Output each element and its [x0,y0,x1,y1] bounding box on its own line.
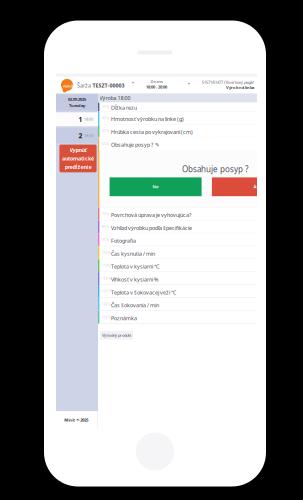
staticText: 51571/51477 Olivarkový pagáč [202,80,254,85]
button[interactable]: Nie [110,177,202,196]
staticText: Obsahuje posyp ? [182,164,248,174]
staticText: Teplota v šokovacej veži °C [111,289,176,296]
button[interactable]: 5/16 [98,124,257,137]
staticText: 8/16 [102,225,109,229]
staticText: 1 [78,115,82,124]
staticText: Čas šokovania / min [111,302,159,309]
staticText: 5/16 [102,129,109,133]
staticText: Čas kysnutia / min [111,250,155,257]
staticText: Poznámka [111,315,137,322]
staticText: 02.09.2025 [68,97,86,102]
staticText: 18:00 - 20:00 [146,84,167,89]
button[interactable]: 11/16 [98,259,257,272]
staticText: Vzhľad výrobku podľa špecifikácie [111,224,192,231]
staticText: 9/16 [102,238,109,242]
staticText: 10/16 [102,251,111,255]
staticText: Vlhkosť v kysiarni % [111,276,158,283]
staticText: Hrúbka cesta po vykrajovaní (cm) [111,128,193,135]
button[interactable]: 10/16 [98,246,257,259]
staticText: ▾ [188,81,190,86]
staticText: Teplota v kysiarni °C [111,263,159,270]
staticText: Výsledný produkt [102,333,131,338]
staticText: Minit © 2025 [64,417,88,423]
button[interactable]: 9/16 [98,233,257,246]
staticText: 11/16 [102,264,111,267]
button[interactable]: 14/16 [98,298,257,311]
staticText: ▾ [132,80,134,85]
button[interactable]: 4/16 [98,112,257,124]
staticText: 14/16 [102,303,111,306]
button[interactable]: Šarža [77,78,139,91]
staticText: Hmotnosť výrobku na linke (g) [111,115,184,122]
staticText: Nie [153,184,159,189]
staticText: Povrchová úprava je vyhovujúca? [111,211,191,218]
staticText: Výrobná linka [226,85,254,90]
staticText: automatické [62,155,94,162]
staticText: Obsahuje posyp ? ✎ [111,141,159,148]
staticText: 4/16 [102,116,109,120]
button[interactable]: Vypnúť [59,145,97,172]
staticText: minit [63,83,74,89]
staticText: TESZT-00003 [92,82,124,89]
staticText: 15/16 [102,316,111,319]
staticText: Áno [253,184,262,189]
button[interactable]: 13/16 [98,285,257,298]
staticText: Vypnúť [69,146,86,153]
button[interactable]: 2 [56,128,98,143]
staticText: 3/16 [102,105,109,109]
staticText: Tuesday [69,103,85,108]
staticText: Fotografia [111,237,136,244]
staticText: 7/16 [102,212,109,216]
staticText: Výroba 18:00 [99,94,130,102]
staticText: 13/16 [102,290,111,293]
staticText: 18:00 [84,133,93,138]
button[interactable]: 12/16 [98,272,257,285]
button[interactable]: 15/16 [98,311,257,324]
button[interactable]: Zmena [146,78,194,91]
button[interactable]: 8/16 [98,220,257,233]
staticText: Šarža [77,82,91,89]
staticText: Dĺžka rezu [111,104,137,111]
staticText: Zmena [150,79,162,84]
staticText: 12/16 [102,277,111,280]
button[interactable]: 6/16 [98,137,256,150]
button[interactable]: Áno [212,177,303,196]
staticText: 18:00 [84,117,93,122]
button[interactable]: 3/16 [98,103,257,112]
button[interactable]: 7/16 [98,208,257,220]
staticText: 6/16 [102,142,109,146]
staticText: 2 [78,131,82,140]
staticText: predĺženie [64,163,91,171]
button[interactable]: 1 [56,112,98,126]
